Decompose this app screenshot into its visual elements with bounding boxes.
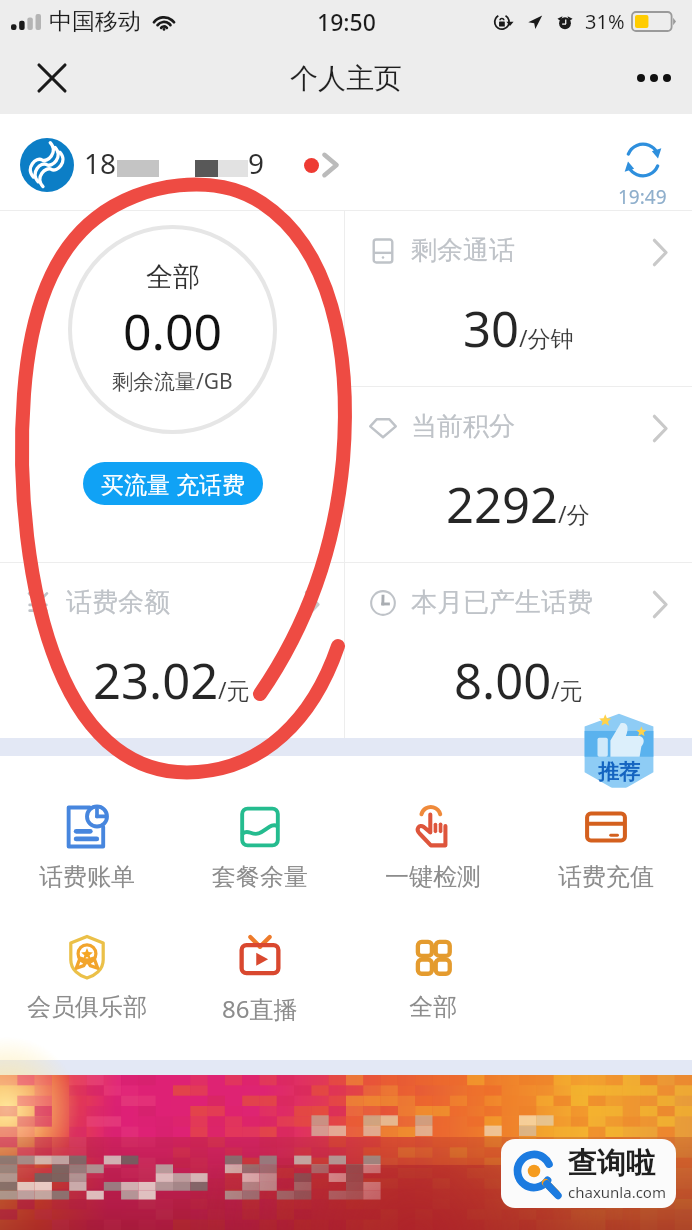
staticText: 话费账单 <box>39 862 135 892</box>
staticText: 中国移动 <box>49 7 141 36</box>
staticText: 会员俱乐部 <box>27 992 147 1022</box>
staticText: /分 <box>558 498 590 529</box>
staticText: 30 <box>463 295 520 362</box>
staticText: 剩余通话 <box>411 234 515 267</box>
staticText: 一键检测 <box>385 862 481 892</box>
staticText: /元 <box>218 674 250 705</box>
staticText: 31% <box>585 8 625 35</box>
staticText: /元 <box>551 674 583 705</box>
staticText: 8.00 <box>454 647 552 714</box>
button[interactable]: Refresh <box>618 138 667 210</box>
button[interactable]: 本月已产生话费 <box>345 563 692 738</box>
staticText: 2292 <box>446 471 559 538</box>
button[interactable]: Messages <box>304 150 340 180</box>
staticText: 个人主页 <box>290 61 402 96</box>
staticText: 19:50 <box>317 6 376 37</box>
button[interactable]: 买流量 充话费 <box>83 462 263 505</box>
button[interactable]: 当前积分 <box>345 387 692 562</box>
staticText: 查询啦 <box>568 1145 655 1182</box>
staticText: 套餐余量 <box>212 862 308 892</box>
button[interactable]: 套餐余量 <box>173 800 346 892</box>
staticText: 推荐 <box>598 759 640 785</box>
button[interactable]: 一键检测 <box>346 800 519 892</box>
staticText: 0.00 <box>123 297 223 365</box>
staticText: 86直播 <box>222 992 298 1025</box>
staticText: 19:49 <box>618 184 667 210</box>
button[interactable]: 会员俱乐部 <box>0 930 173 1022</box>
button[interactable]: 86直播 <box>173 930 346 1025</box>
staticText: 18 <box>84 144 117 182</box>
button[interactable]: 话费余额 <box>0 563 344 738</box>
staticText: 9 <box>248 144 265 182</box>
staticText: /分钟 <box>519 322 574 353</box>
staticText: 买流量 充话费 <box>101 468 245 499</box>
staticText: 话费余额 <box>66 586 170 619</box>
button[interactable]: 全部 <box>346 930 519 1022</box>
staticText: 23.02 <box>93 647 219 714</box>
staticText: 全部 <box>146 260 200 294</box>
staticText: 本月已产生话费 <box>411 586 593 619</box>
staticText: 剩余流量/GB <box>112 367 233 396</box>
staticText: 当前积分 <box>411 410 515 443</box>
button[interactable]: 话费账单 <box>0 800 173 892</box>
button[interactable]: 剩余通话 <box>345 211 692 386</box>
button[interactable]: Close <box>21 47 83 109</box>
staticText: 全部 <box>409 992 457 1022</box>
button[interactable]: 查询啦 <box>501 1139 676 1208</box>
staticText: 话费充值 <box>558 862 654 892</box>
staticText: chaxunla.com <box>568 1182 666 1202</box>
button[interactable]: 话费充值 <box>519 800 692 892</box>
button[interactable]: More options <box>623 47 685 109</box>
